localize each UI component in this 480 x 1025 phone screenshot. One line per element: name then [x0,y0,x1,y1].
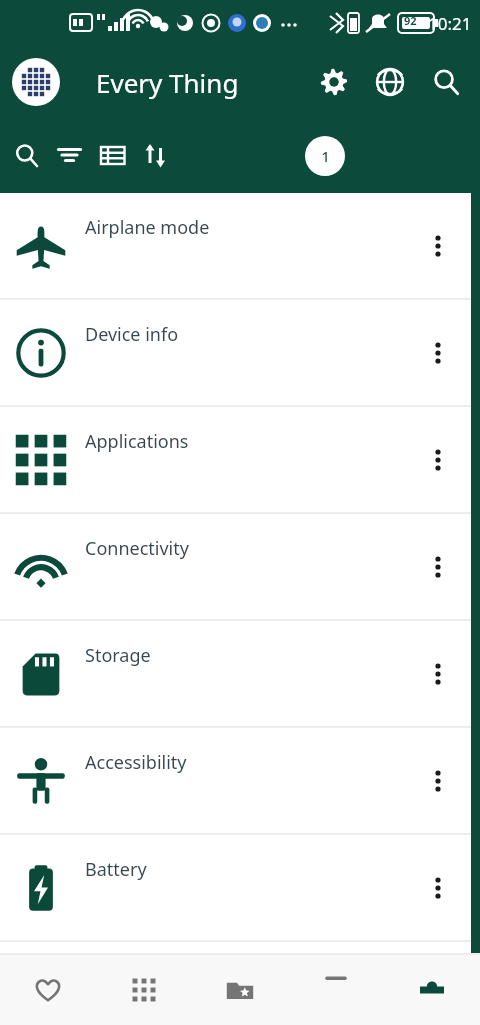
button[interactable]: Folders [192,955,288,1025]
button[interactable]: Settings [306,54,362,110]
button[interactable]: More options [418,761,458,801]
button[interactable]: Profile [12,58,60,106]
staticText: 10:21 [428,12,472,35]
button[interactable]: More options [418,333,458,373]
button[interactable]: Favourites [0,955,96,1025]
button[interactable]: Language [362,54,418,110]
button[interactable]: Search [418,54,474,110]
staticText: Airplane mode [85,215,210,240]
staticText: 92 [404,13,417,28]
button[interactable]: Connectivity [0,514,480,619]
staticText: Applications [85,429,189,454]
button[interactable]: Search [5,134,48,177]
button[interactable]: Filter [48,134,91,177]
staticText: Every Thing [96,65,239,100]
staticText: Accessibility [85,750,187,775]
button[interactable]: More options [418,226,458,266]
staticText: Device info [85,322,179,347]
staticText: Connectivity [85,536,189,561]
button[interactable]: More options [418,868,458,908]
button[interactable]: Apps [96,955,192,1025]
button[interactable]: Applications [0,407,480,512]
staticText: 1 [321,146,330,166]
staticText: Storage [85,643,151,668]
button[interactable]: List view [91,134,134,177]
button[interactable]: Device info [0,300,480,405]
button[interactable]: More options [418,654,458,694]
button[interactable]: More options [418,440,458,480]
button[interactable]: 1 [305,136,345,176]
button[interactable]: Airplane mode [0,193,480,298]
button[interactable]: More [288,955,384,1025]
button[interactable]: Storage [0,621,480,726]
staticText: Battery [85,857,147,882]
button[interactable]: More options [418,547,458,587]
button[interactable]: Settings [384,955,480,1025]
button[interactable]: Battery [0,835,480,940]
button[interactable]: Accessibility [0,728,480,833]
button[interactable]: Sort [134,134,177,177]
